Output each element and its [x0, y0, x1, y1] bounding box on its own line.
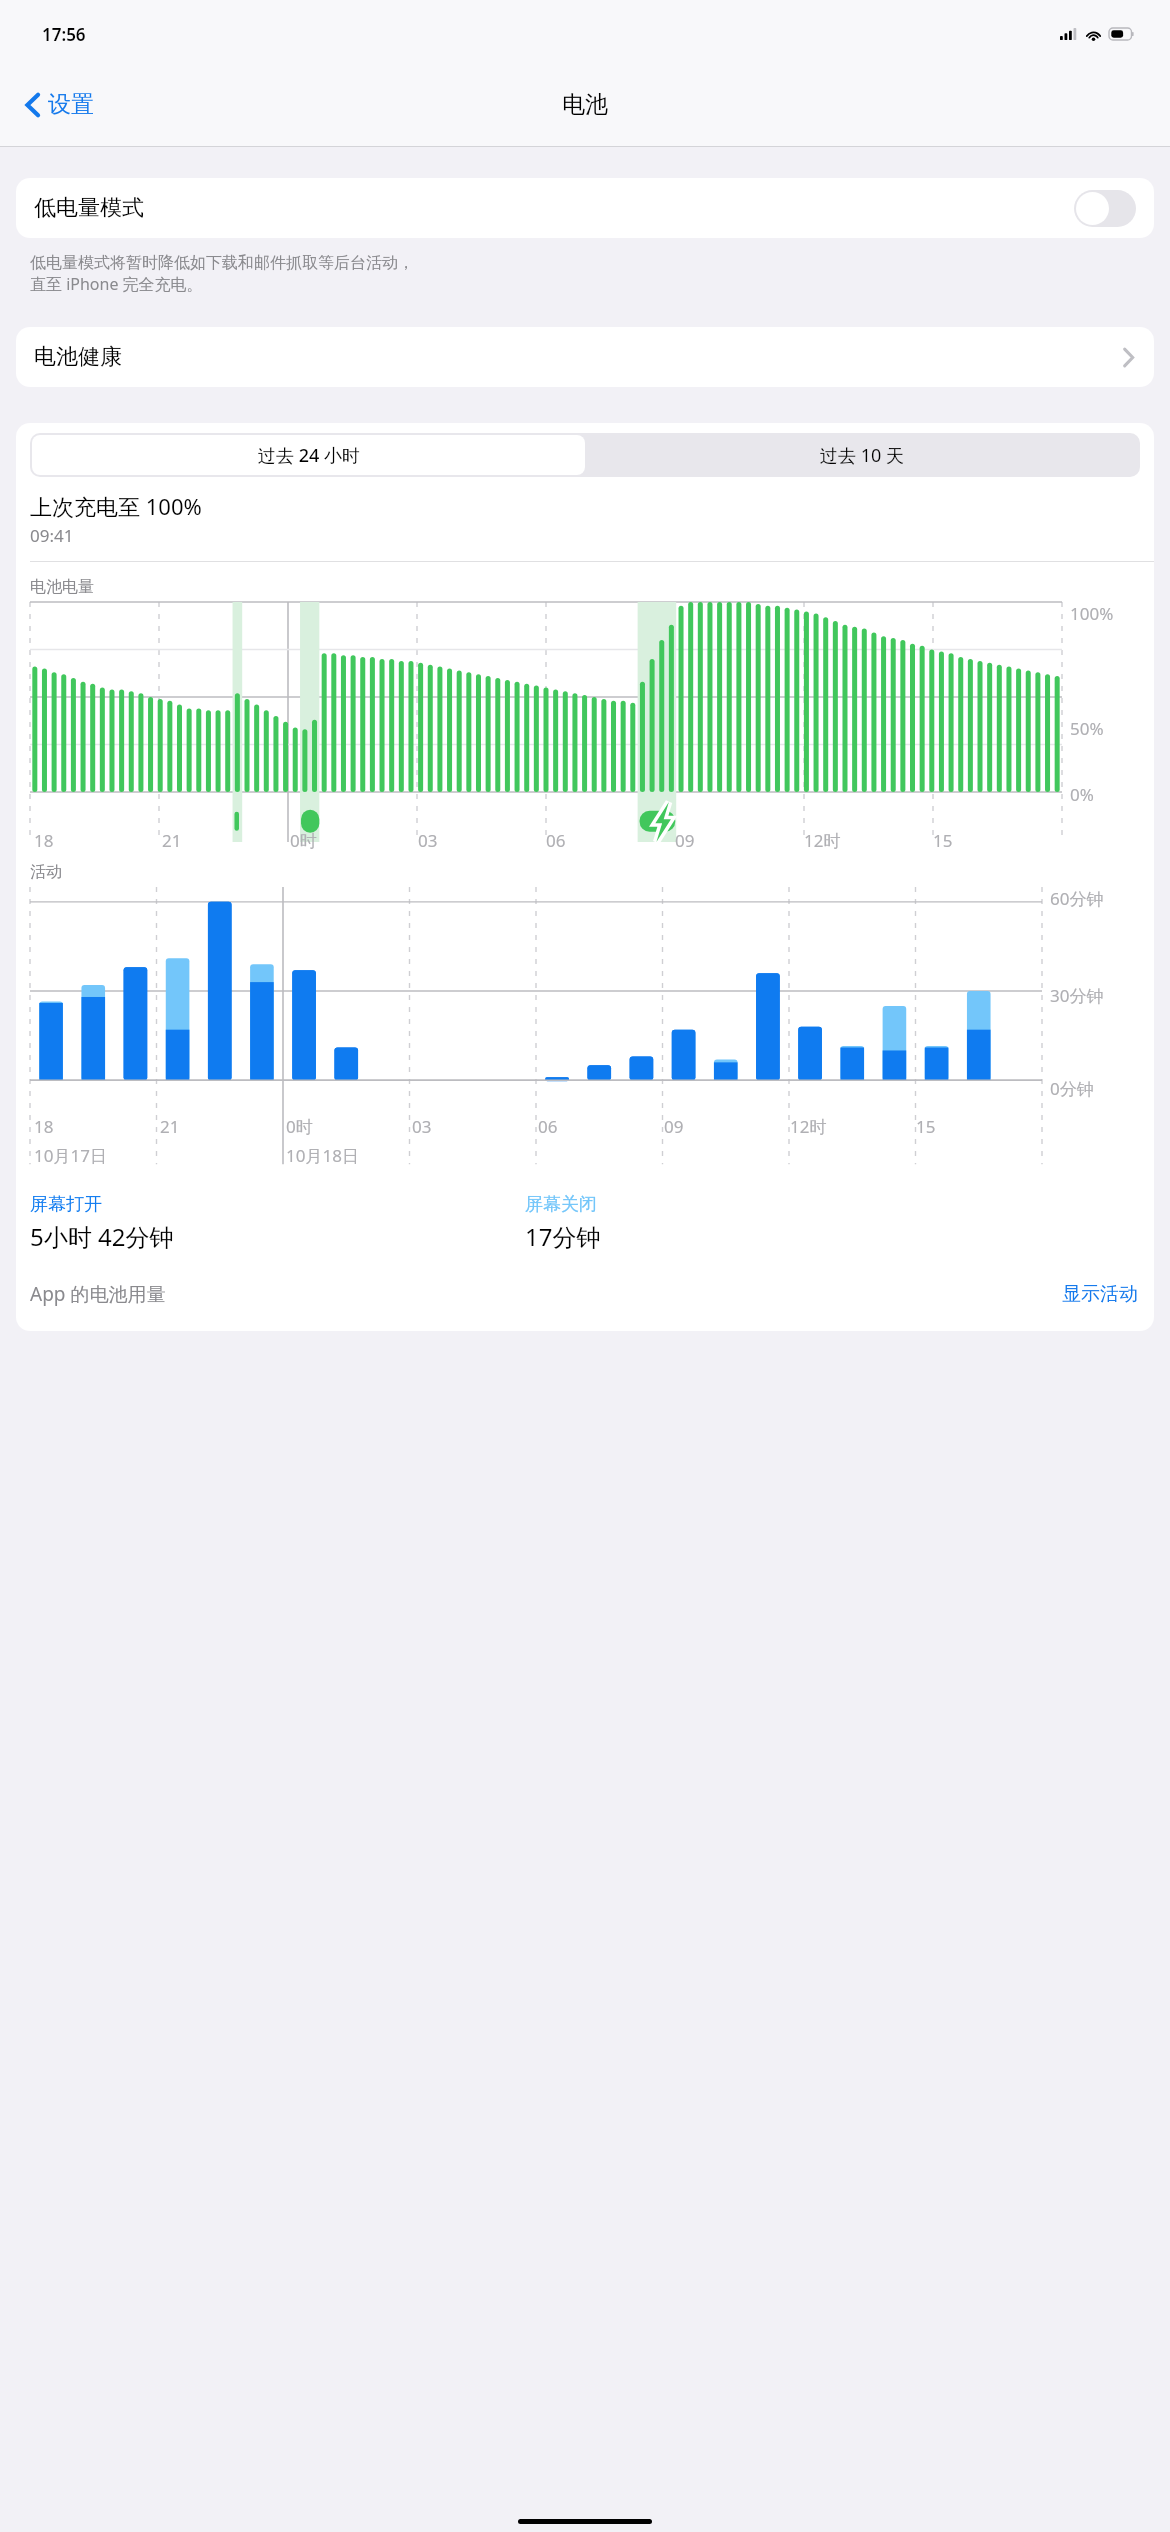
button[interactable]: 电池健康 — [16, 327, 1154, 387]
staticText: 06 — [546, 829, 566, 852]
staticText: 03 — [418, 829, 438, 852]
staticText: 上次充电至 100% — [30, 491, 202, 521]
staticText: App 的电池用量 — [30, 1281, 166, 1307]
staticText: 低电量模式将暂时降低如下载和邮件抓取等后台活动， — [30, 253, 414, 273]
staticText: 17分钟 — [525, 1220, 601, 1253]
staticText: 12时 — [790, 1115, 827, 1138]
staticText: 电池健康 — [34, 343, 122, 371]
staticText: 09 — [664, 1115, 684, 1138]
staticText: 显示活动 — [1062, 1282, 1138, 1306]
button[interactable]: 低电量模式 — [16, 178, 1154, 238]
staticText: 15 — [933, 829, 953, 852]
staticText: 10月18日 — [286, 1144, 359, 1167]
staticText: 09:41 — [30, 524, 74, 547]
staticText: 30分钟 — [1050, 984, 1104, 1007]
staticText: 60分钟 — [1050, 887, 1104, 910]
staticText: 0分钟 — [1050, 1077, 1094, 1100]
staticText: 屏幕打开 — [30, 1193, 102, 1216]
staticText: 低电量模式 — [34, 194, 144, 222]
staticText: 18 — [34, 1115, 54, 1138]
staticText: 0时 — [286, 1115, 313, 1138]
staticText: 15 — [916, 1115, 936, 1138]
staticText: 21 — [162, 829, 182, 852]
staticText: 0% — [1070, 783, 1094, 806]
staticText: 活动 — [30, 862, 62, 882]
staticText: 06 — [538, 1115, 558, 1138]
staticText: 过去 24 小时 — [258, 443, 360, 468]
staticText: 21 — [160, 1115, 180, 1138]
staticText: 100% — [1070, 602, 1114, 625]
staticText: 17:56 — [42, 23, 86, 46]
staticText: 设置 — [48, 90, 94, 119]
staticText: 18 — [34, 829, 54, 852]
staticText: 50% — [1070, 717, 1104, 740]
staticText: 03 — [412, 1115, 432, 1138]
staticText: 09 — [675, 829, 695, 852]
button[interactable]: 过去 10 天 — [585, 435, 1138, 475]
staticText: 过去 10 天 — [820, 443, 904, 468]
staticText: 10月17日 — [34, 1144, 107, 1167]
staticText: 电池电量 — [30, 577, 94, 597]
staticText: 直至 iPhone 完全充电。 — [30, 273, 203, 295]
button[interactable]: 过去 24 小时 — [32, 435, 585, 475]
staticText: 0时 — [290, 829, 317, 852]
staticText: 5小时 42分钟 — [30, 1220, 174, 1253]
staticText: 电池 — [562, 90, 608, 119]
staticText: 12时 — [804, 829, 841, 852]
staticText: 屏幕关闭 — [525, 1193, 597, 1216]
button[interactable]: 设置 — [18, 82, 102, 127]
button[interactable]: App 的电池用量 — [16, 1281, 1154, 1307]
